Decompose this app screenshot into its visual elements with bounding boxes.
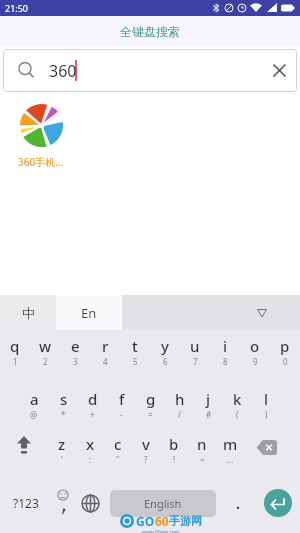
button[interactable]: o [240,330,270,380]
button[interactable]: 全键盘搜索 [0,16,300,46]
staticText: a [30,389,39,409]
staticText: p [280,336,290,356]
button[interactable]: l [252,380,281,430]
button[interactable]: d [78,380,107,430]
staticText: z [58,434,66,454]
staticText: l [264,389,269,409]
button[interactable] [256,478,300,528]
button[interactable]: v [132,430,160,478]
staticText: 9 [253,356,258,367]
staticText: 6 [163,356,168,367]
button[interactable]: t [120,330,150,380]
staticText: ?123 [13,495,39,511]
staticText: " [116,454,120,465]
staticText: i [223,336,228,356]
staticText: ? [144,454,148,465]
button[interactable]: h [165,380,194,430]
staticText: ( [236,409,239,420]
staticText: 360手机... [18,155,64,169]
staticText: n [197,434,207,454]
staticText: + [90,409,95,420]
button[interactable]: u [180,330,210,380]
button[interactable]: e [60,330,90,380]
staticText: u [190,336,200,356]
staticText: - [120,409,123,420]
button[interactable]: m [216,430,244,478]
staticText: f [119,389,125,409]
button[interactable]: English [110,490,216,517]
staticText: GO [136,513,155,529]
staticText: ' [61,454,63,465]
staticText: ! [173,454,176,465]
staticText: En [81,304,97,322]
staticText: s [60,389,68,409]
button[interactable]: z [48,430,76,478]
staticText: r [102,336,109,356]
staticText: English [144,496,182,511]
staticText: j [206,389,211,409]
button[interactable]: En [56,295,122,330]
staticText: c [114,434,122,454]
staticText: : [89,454,92,465]
staticText: y [161,336,169,356]
staticText: 中 [22,305,35,321]
staticText: @ [30,409,38,420]
staticText: 全键盘搜索 [120,24,180,39]
button[interactable]: n [188,430,216,478]
staticText: 5 [133,356,138,367]
staticText: 8 [223,356,228,367]
staticText: b [169,434,179,454]
staticText: w [39,336,52,356]
button[interactable]: ?123 [0,478,52,528]
staticText: o [250,336,260,356]
staticText: www.60sjw.com [142,529,180,533]
button[interactable]: g [136,380,165,430]
staticText: g [146,389,156,409]
button[interactable]: r [90,330,120,380]
staticText: 7 [193,356,198,367]
button[interactable]: p [270,330,300,380]
staticText: 4 [103,356,108,367]
staticText: m [223,434,238,454]
button[interactable]: y [150,330,180,380]
button[interactable] [0,430,48,478]
button[interactable]: 中 [0,295,56,330]
button[interactable]: 360 [3,49,297,92]
staticText: 手游网 [169,514,202,528]
staticText: 0 [283,356,288,367]
staticText: k [233,389,242,409]
button[interactable]: a [19,380,49,430]
button[interactable] [52,478,74,528]
button[interactable]: i [210,330,240,380]
staticText: 60 [155,513,169,529]
button[interactable]: . [220,478,256,528]
button[interactable] [224,295,300,330]
button[interactable] [74,478,106,528]
staticText: = [148,409,153,420]
button[interactable]: x [76,430,104,478]
button[interactable]: f [107,380,136,430]
button[interactable]: q [0,330,30,380]
button[interactable]: s [49,380,78,430]
staticText: 3 [73,356,78,367]
button[interactable]: 360手机... [17,104,65,169]
button[interactable]: j [194,380,223,430]
button[interactable]: w [30,330,60,380]
staticText: 2 [43,356,48,367]
button[interactable]: b [160,430,188,478]
staticText: / [178,409,181,420]
staticText: v [142,434,150,454]
staticText: h [175,389,185,409]
staticText: … [227,454,234,465]
button[interactable] [244,430,300,478]
button[interactable]: k [223,380,252,430]
staticText: 360 [49,60,77,82]
staticText: x [86,434,95,454]
staticText: * [61,409,66,420]
button[interactable]: c [104,430,132,478]
staticText: t [132,336,138,356]
staticText: ~ [200,454,205,465]
staticText: . [236,494,240,513]
staticText: q [10,336,20,356]
staticText: ) [265,409,268,420]
